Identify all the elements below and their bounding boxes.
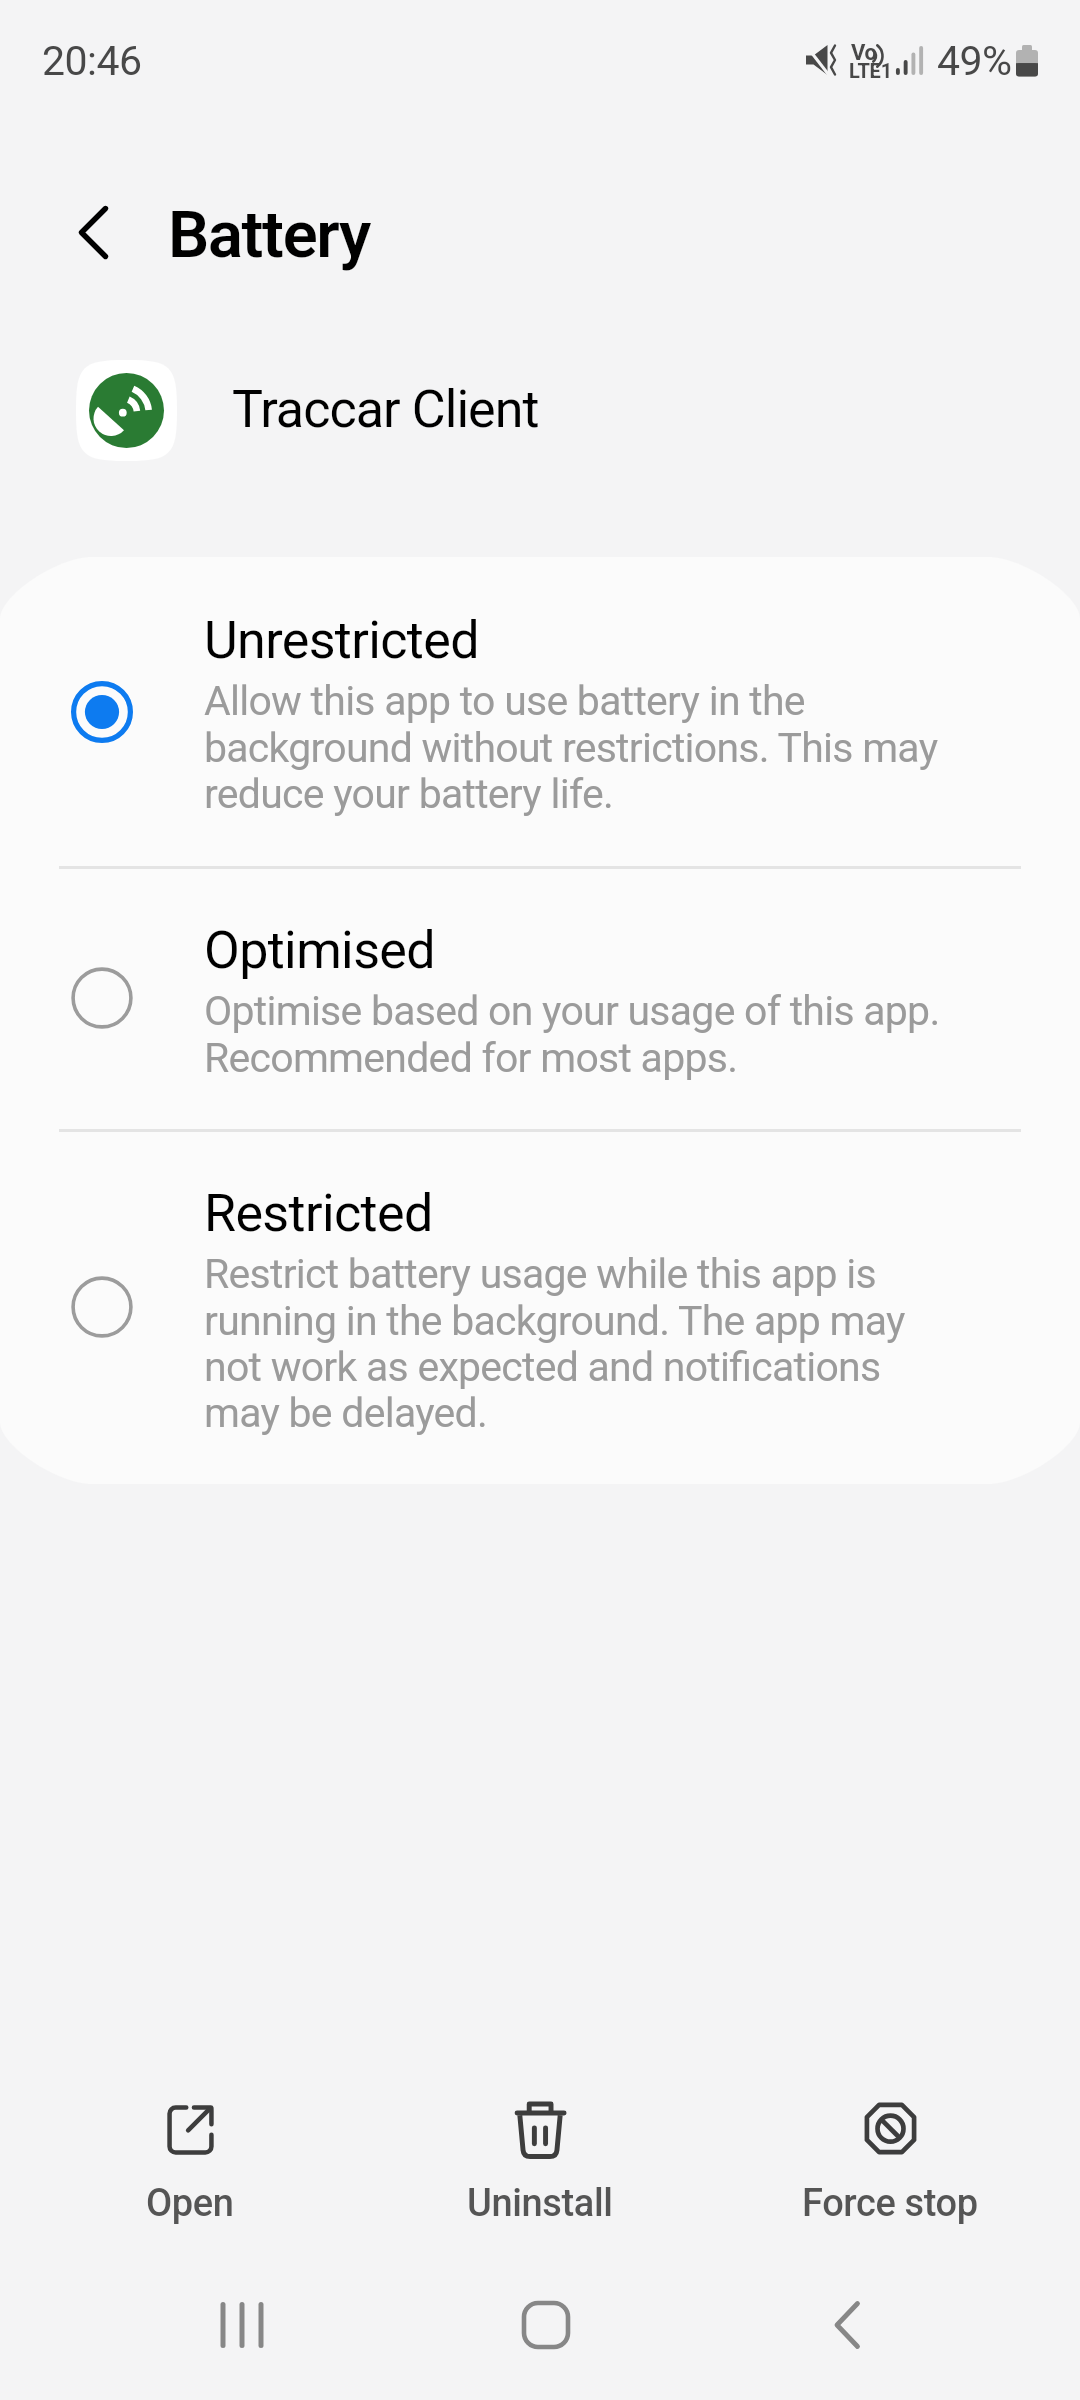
- staticText: Optimised: [204, 920, 435, 981]
- button[interactable]: Recent apps: [152, 2255, 332, 2395]
- staticText: Restricted: [204, 1183, 433, 1244]
- staticText: Vo: [851, 40, 877, 66]
- staticText: Battery: [168, 197, 370, 273]
- staticText: Unrestricted: [204, 610, 479, 671]
- button[interactable]: Unrestricted: [0, 557, 1080, 867]
- staticText: Restrict battery usage while this app is…: [204, 1250, 905, 1437]
- staticText: Optimise based on your usage of this app…: [204, 987, 940, 1082]
- button[interactable]: Force stop: [740, 2075, 1040, 2245]
- button[interactable]: Back: [757, 2255, 937, 2395]
- staticText: Uninstall: [467, 2181, 613, 2226]
- button[interactable]: Restricted: [0, 1130, 1080, 1484]
- staticText: 20:46: [42, 37, 142, 85]
- button[interactable]: Home: [454, 2255, 634, 2395]
- button[interactable]: Open: [40, 2075, 340, 2245]
- staticText: 49%: [937, 37, 1012, 85]
- button[interactable]: Navigate up: [17, 155, 167, 305]
- staticText: Traccar Client: [232, 379, 539, 440]
- staticText: Force stop: [802, 2181, 978, 2226]
- staticText: Open: [146, 2181, 234, 2226]
- staticText: LTE1: [849, 59, 892, 82]
- button[interactable]: Optimised: [0, 867, 1080, 1130]
- button[interactable]: Uninstall: [390, 2075, 690, 2245]
- staticText: Allow this app to use battery in the bac…: [204, 677, 938, 818]
